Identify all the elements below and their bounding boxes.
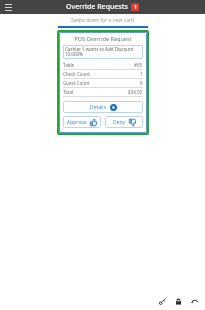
staticText: Approve (67, 119, 87, 126)
staticText: Table (63, 62, 75, 68)
staticText: 1 (140, 71, 143, 77)
button[interactable]: Approve (63, 116, 101, 128)
staticText: Cashier 1 wants to Add Discount 10.000% (65, 46, 134, 58)
staticText: #65 (134, 62, 143, 68)
staticText: Swipe down for a new card (71, 17, 134, 24)
staticText: $34.50 (128, 89, 143, 95)
button[interactable]: Menu (3, 2, 14, 13)
button[interactable]: Deny (105, 116, 143, 128)
staticText: 1 (134, 4, 137, 11)
button[interactable]: Keyboard (156, 295, 169, 308)
button[interactable]: POS Override Request (59, 32, 147, 133)
staticText: Guest Count (63, 80, 90, 86)
staticText: Deny (113, 119, 126, 126)
button[interactable]: Back (188, 295, 201, 308)
staticText: Override Requests (66, 2, 128, 12)
staticText: Total (63, 89, 74, 95)
staticText: POS Override Request (63, 35, 143, 42)
button[interactable]: Lock (172, 295, 185, 308)
staticText: Check Count (63, 71, 90, 77)
staticText: Details (90, 104, 107, 111)
button[interactable]: Details (63, 101, 143, 113)
staticText: 6 (140, 80, 143, 86)
